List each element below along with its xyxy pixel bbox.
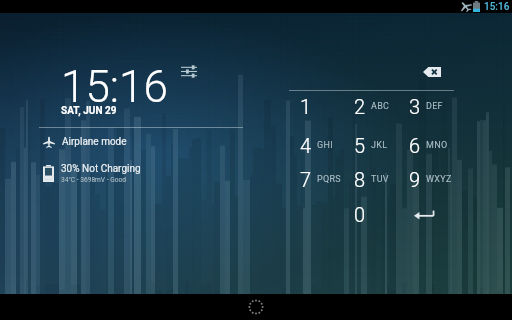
- staticText: SAT, JUN 29: [61, 105, 117, 117]
- staticText: 9: [409, 168, 421, 191]
- staticText: 0: [354, 203, 366, 226]
- staticText: 34°C - 3698mV - Good: [61, 176, 126, 184]
- button[interactable]: Enter: [409, 199, 463, 229]
- staticText: 6: [409, 134, 421, 157]
- button[interactable]: Home: [245, 296, 267, 318]
- other: Airplane mode: [459, 1, 472, 12]
- button[interactable]: 7: [300, 164, 354, 194]
- button[interactable]: 1: [300, 91, 354, 121]
- staticText: JKL: [371, 140, 388, 151]
- staticText: 1: [300, 95, 312, 118]
- staticText: 3: [409, 95, 421, 118]
- button[interactable]: 4: [300, 130, 354, 160]
- staticText: WXYZ: [426, 174, 452, 185]
- staticText: 7: [300, 168, 312, 191]
- button[interactable]: 5: [354, 130, 408, 160]
- button[interactable]: Settings: [181, 65, 197, 78]
- button[interactable]: 30% Not Charging: [39, 159, 243, 187]
- staticText: 15:16: [484, 1, 510, 13]
- staticText: MNO: [426, 140, 448, 151]
- button[interactable]: 3: [409, 91, 463, 121]
- staticText: DEF: [426, 101, 443, 112]
- staticText: 5: [354, 134, 366, 157]
- staticText: 30% Not Charging: [61, 163, 141, 175]
- staticText: 15:16: [61, 61, 168, 113]
- button[interactable]: 8: [354, 164, 408, 194]
- button[interactable]: 2: [354, 91, 408, 121]
- staticText: GHI: [317, 140, 333, 151]
- staticText: TUV: [371, 174, 389, 185]
- button[interactable]: Airplane mode: [39, 131, 243, 153]
- button[interactable]: Backspace: [415, 62, 449, 82]
- staticText: PQRS: [317, 174, 341, 185]
- button[interactable]: 0: [354, 199, 408, 229]
- staticText: 2: [354, 95, 366, 118]
- staticText: Airplane mode: [62, 136, 127, 148]
- staticText: 4: [300, 134, 312, 157]
- button[interactable]: 9: [409, 164, 463, 194]
- staticText: ABC: [371, 101, 390, 112]
- staticText: 8: [354, 168, 366, 191]
- button[interactable]: 6: [409, 130, 463, 160]
